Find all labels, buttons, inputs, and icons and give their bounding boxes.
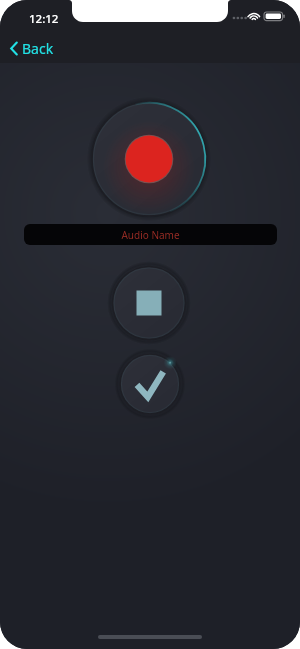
button[interactable]: Back — [6, 35, 58, 62]
staticText: Back — [22, 39, 54, 58]
button[interactable]: Done — [114, 348, 186, 420]
staticText: Audio Name — [121, 228, 180, 242]
button[interactable]: Audio Name — [24, 224, 277, 245]
button[interactable]: Record — [87, 97, 211, 221]
button[interactable]: Stop — [107, 261, 191, 345]
staticText: 12:12 — [29, 11, 59, 27]
